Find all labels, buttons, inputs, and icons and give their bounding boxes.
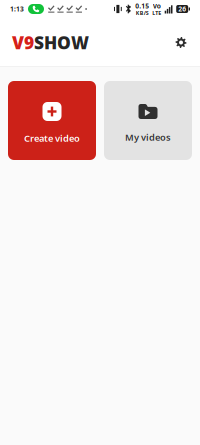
staticText: Vo [153,1,161,10]
staticText: My videos [125,131,171,143]
button[interactable]: Create video [8,81,96,160]
staticText: 26 [178,5,186,13]
staticText: V9 [12,31,34,54]
staticText: Create video [24,132,80,144]
staticText: 0.15 [135,1,149,10]
staticText: KB/S [136,9,149,16]
staticText: SHOW [34,31,89,54]
button[interactable]: Settings [168,29,194,55]
button[interactable]: My videos [104,81,192,160]
staticText: LTE [152,9,161,16]
staticText: 1:13 [10,5,24,13]
